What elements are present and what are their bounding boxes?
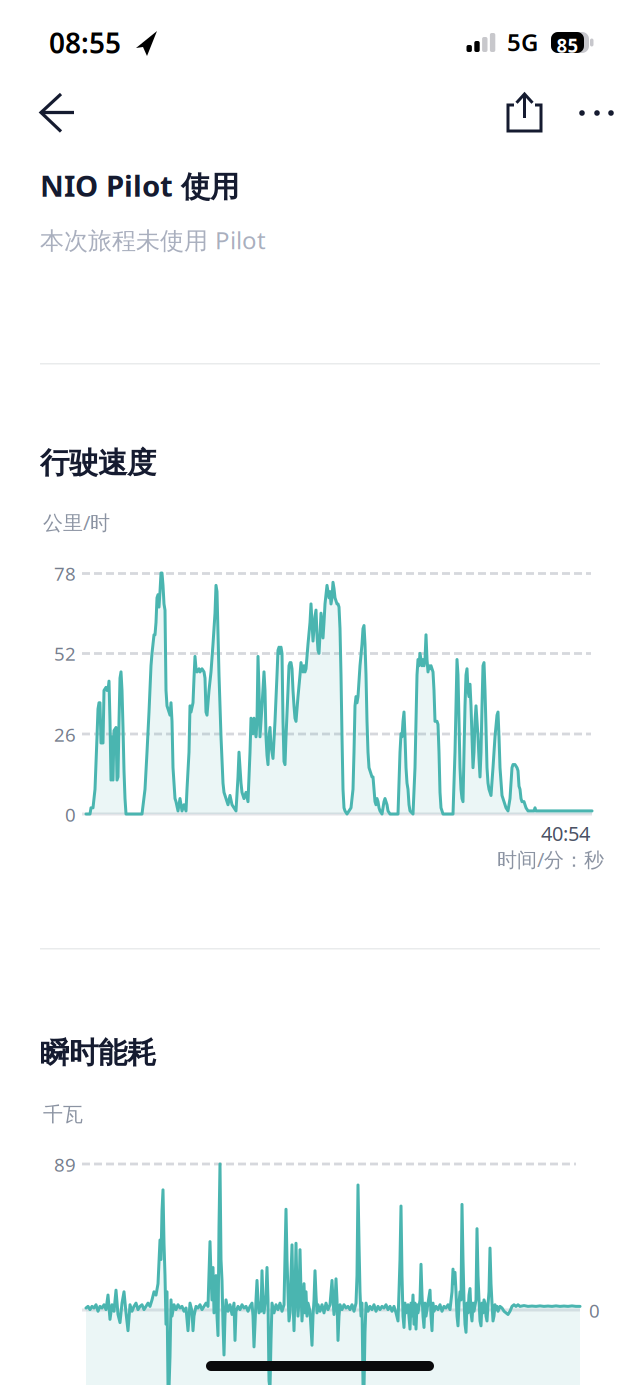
staticText: 52: [54, 641, 76, 666]
staticText: 40:54: [541, 820, 590, 847]
staticText: 89: [54, 1152, 76, 1177]
staticText: 时间/分：秒: [497, 846, 604, 873]
staticText: 78: [54, 561, 76, 586]
staticText: 0: [65, 802, 76, 827]
staticText: 本次旅程未使用 Pilot: [40, 224, 266, 256]
staticText: NIO Pilot 使用: [40, 166, 239, 205]
staticText: 0: [589, 1298, 600, 1323]
staticText: 5G: [507, 26, 538, 58]
staticText: 85: [556, 33, 578, 58]
staticText: 行驶速度: [40, 445, 156, 481]
staticText: 瞬时能耗: [40, 1035, 156, 1071]
staticText: 08:55: [49, 24, 121, 61]
staticText: 26: [54, 722, 76, 747]
staticText: 公里/时: [43, 509, 110, 536]
button[interactable]: Back: [30, 86, 84, 140]
button[interactable]: Share: [500, 86, 550, 138]
staticText: 千瓦: [43, 1102, 83, 1127]
button[interactable]: More: [572, 103, 622, 123]
